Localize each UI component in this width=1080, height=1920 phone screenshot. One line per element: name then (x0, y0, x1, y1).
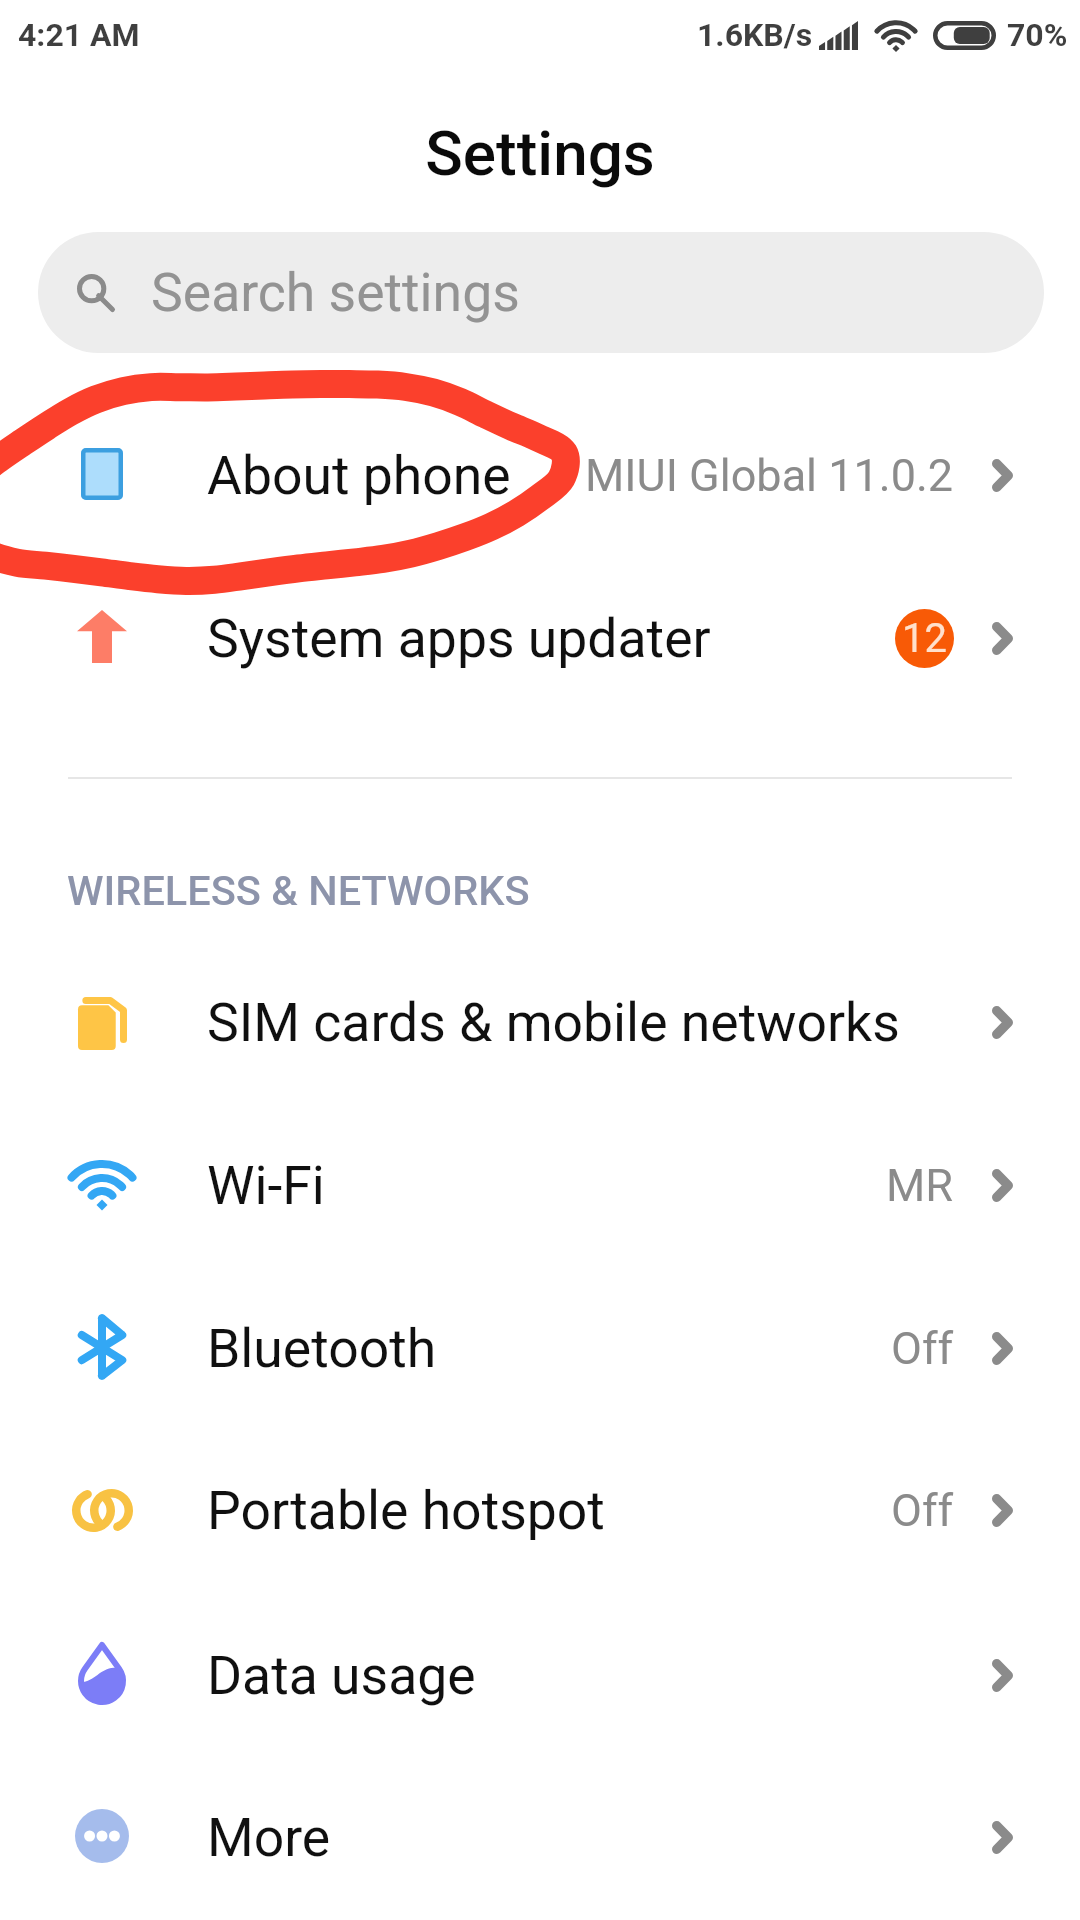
staticText: More (207, 1806, 331, 1869)
staticText: 12 (902, 615, 947, 662)
staticText: Search settings (151, 261, 520, 324)
staticText: Off (891, 1484, 954, 1537)
staticText: MR (886, 1159, 954, 1212)
staticText: Portable hotspot (207, 1479, 605, 1542)
staticText: Wi-Fi (207, 1154, 325, 1217)
button[interactable]: Portable hotspot (0, 1429, 1080, 1592)
button[interactable]: System apps updater (0, 557, 1080, 720)
button[interactable]: More (0, 1756, 1080, 1919)
button[interactable]: SIM cards & mobile networks (0, 941, 1080, 1104)
staticText: Off (891, 1322, 954, 1375)
staticText: WIRELESS & NETWORKS (67, 866, 530, 915)
button[interactable]: Data usage (0, 1594, 1080, 1757)
staticText: Data usage (207, 1644, 476, 1707)
staticText: SIM cards & mobile networks (207, 991, 900, 1054)
staticText: System apps updater (207, 607, 711, 670)
button[interactable]: Wi-Fi (0, 1104, 1080, 1267)
staticText: Settings (0, 117, 1080, 190)
staticText: 70% (1007, 16, 1068, 54)
staticText: Bluetooth (207, 1317, 437, 1380)
staticText: About phone (207, 444, 511, 507)
staticText: MIUI Global 11.0.2 (585, 449, 954, 502)
button[interactable]: Bluetooth (0, 1267, 1080, 1430)
staticText: 1.6KB/s (697, 16, 813, 54)
button[interactable]: Search settings (38, 232, 1044, 353)
button[interactable]: About phone (0, 394, 1080, 557)
staticText: 4:21 AM (18, 16, 140, 54)
